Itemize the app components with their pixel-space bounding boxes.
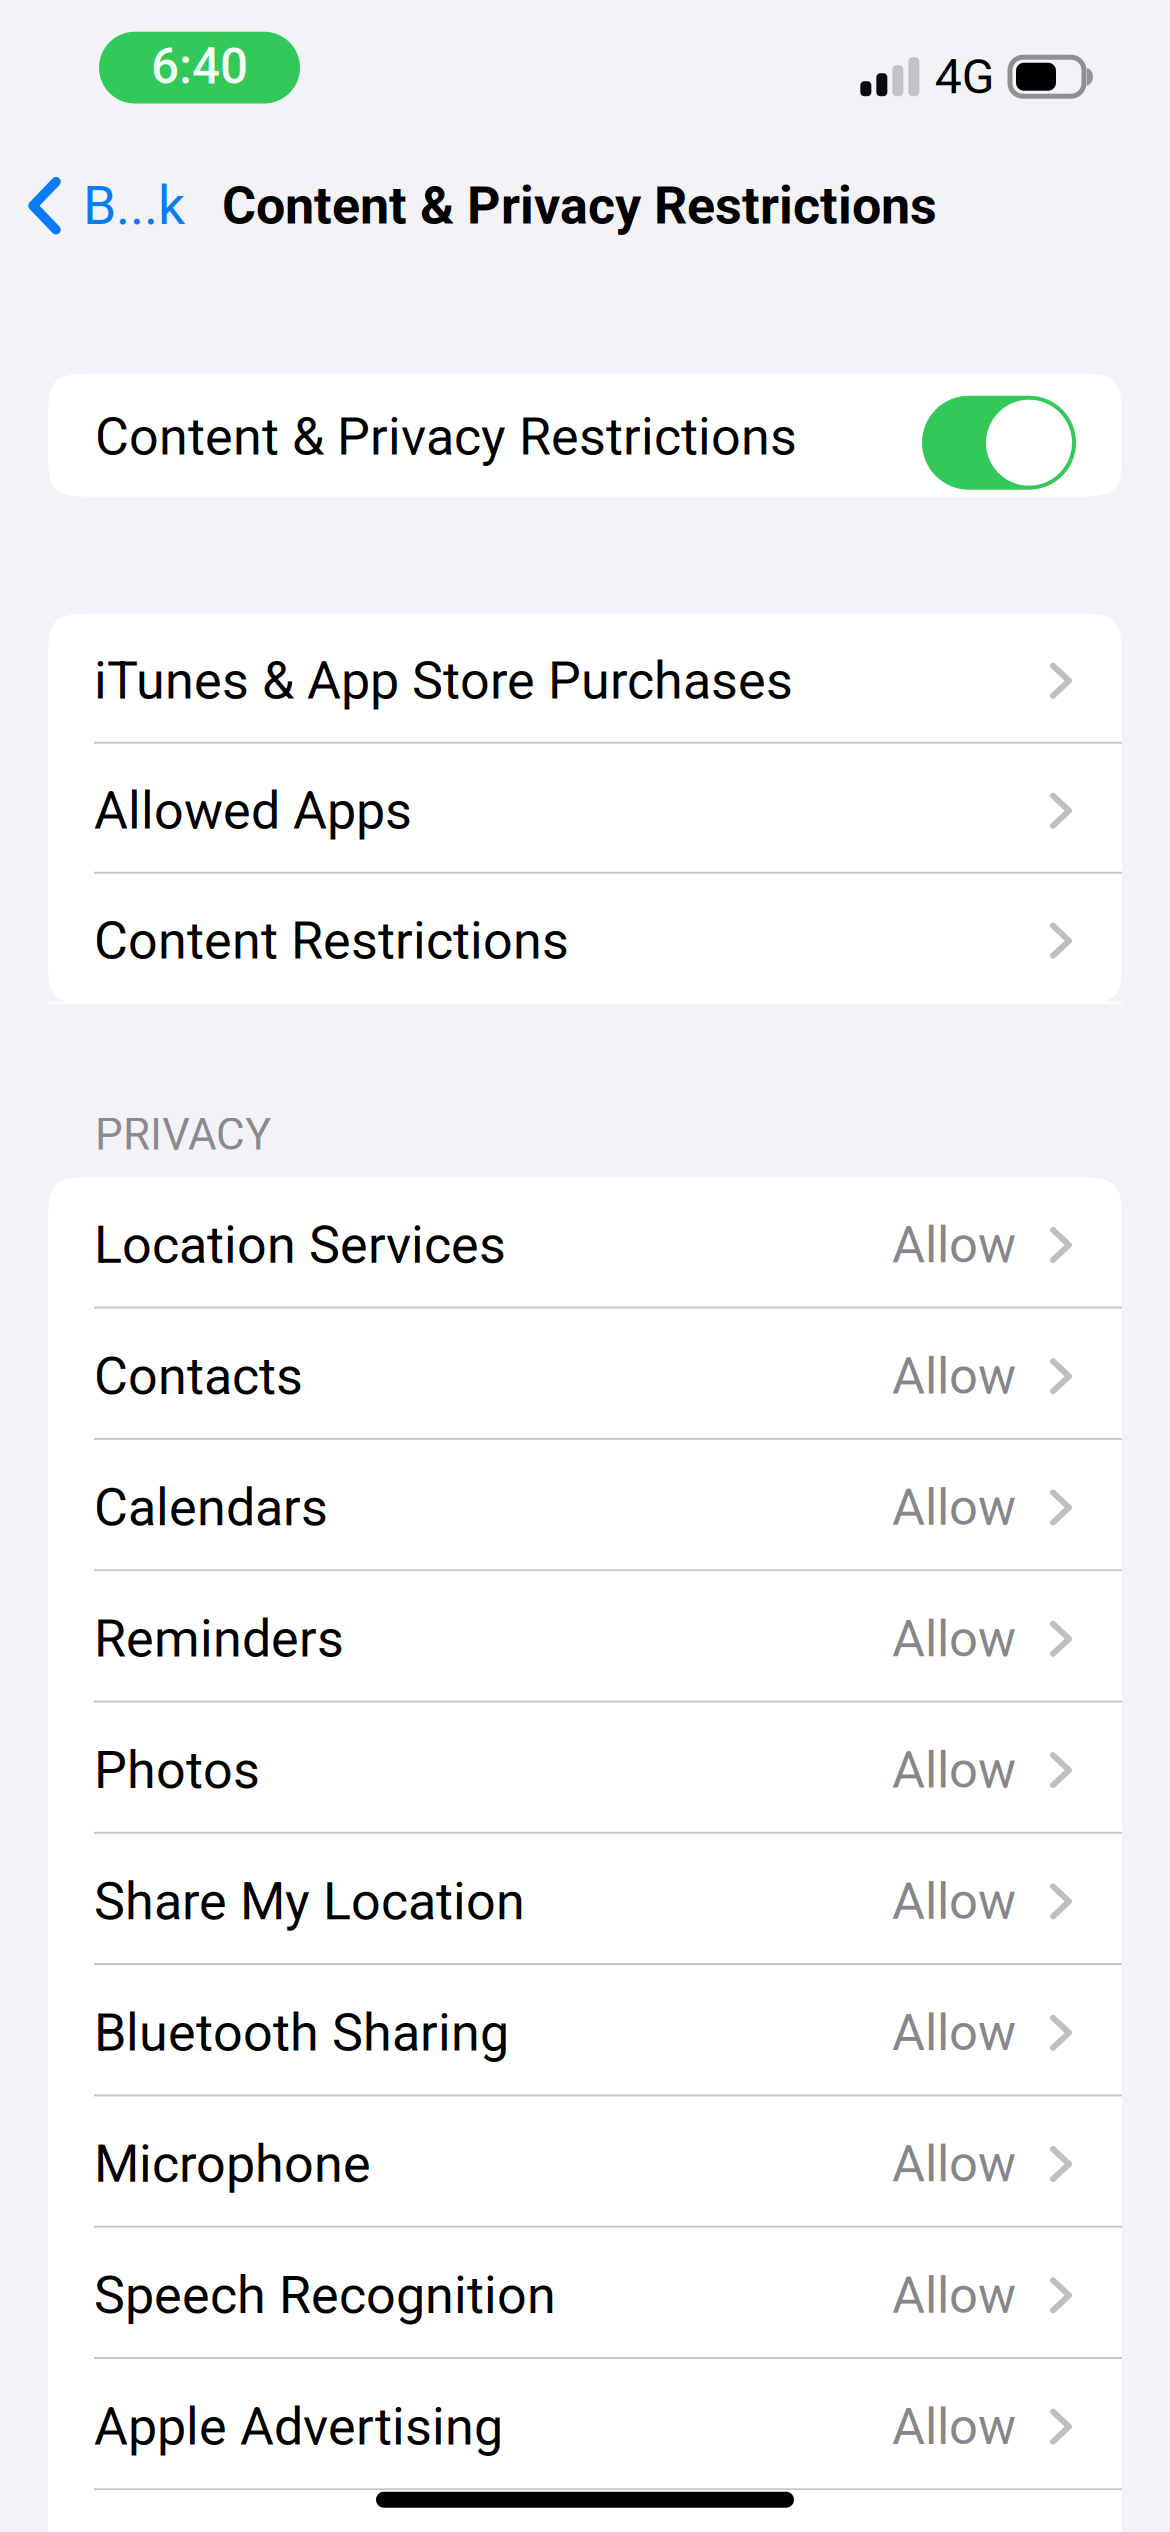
staticText: iTunes & App Store Purchases [94, 650, 793, 711]
button[interactable]: Content & Privacy Restrictions [48, 374, 1122, 497]
staticText: Content Restrictions [94, 910, 569, 971]
staticText: Allow [892, 2397, 1016, 2456]
button[interactable]: Allowed Apps [48, 744, 1122, 874]
staticText: Photos [94, 1740, 260, 1801]
staticText: Microphone [94, 2134, 371, 2194]
staticText: 4G [935, 49, 995, 105]
button[interactable]: Apple Advertising [48, 2359, 1122, 2490]
staticText: Content & Privacy Restrictions [222, 175, 937, 236]
button[interactable]: Content Restrictions [48, 874, 1122, 1004]
button[interactable]: iTunes & App Store Purchases [48, 614, 1122, 744]
staticText: Allow [892, 1346, 1016, 1406]
staticText: Allow [892, 1215, 1016, 1275]
button[interactable]: Contacts [48, 1309, 1122, 1440]
staticText: Allow [892, 1609, 1016, 1668]
staticText: Allow [892, 2266, 1016, 2325]
staticText: Location Services [94, 1214, 506, 1275]
staticText: Allowed Apps [94, 780, 412, 841]
button[interactable]: Speech Recognition [48, 2228, 1122, 2359]
button[interactable]: Share My Location [48, 1834, 1122, 1965]
staticText: Content & Privacy Restrictions [95, 406, 797, 467]
button[interactable]: Reminders [48, 1571, 1122, 1702]
staticText: B...k [83, 174, 185, 237]
button[interactable]: Calendars [48, 1440, 1122, 1571]
staticText: 6:40 [151, 38, 248, 95]
staticText: Allow [892, 1740, 1016, 1800]
button[interactable]: Location Services [48, 1177, 1122, 1309]
staticText: Apple Advertising [94, 2396, 503, 2457]
staticText: Allow [892, 2003, 1016, 2062]
staticText: Calendars [94, 1477, 328, 1538]
staticText: Allow [892, 1872, 1016, 1931]
staticText: Allow [892, 2134, 1016, 2194]
staticText: Bluetooth Sharing [94, 2002, 509, 2063]
button[interactable]: Back [0, 152, 195, 260]
staticText: Speech Recognition [94, 2265, 556, 2326]
staticText: Allow [892, 1478, 1016, 1537]
button[interactable]: Photos [48, 1702, 1122, 1834]
staticText: Contacts [94, 1346, 303, 1407]
staticText: PRIVACY [95, 1109, 271, 1160]
button[interactable]: Microphone [48, 2096, 1122, 2228]
staticText: Reminders [94, 1608, 344, 1669]
staticText: Share My Location [94, 1871, 525, 1932]
button[interactable]: Bluetooth Sharing [48, 1965, 1122, 2096]
